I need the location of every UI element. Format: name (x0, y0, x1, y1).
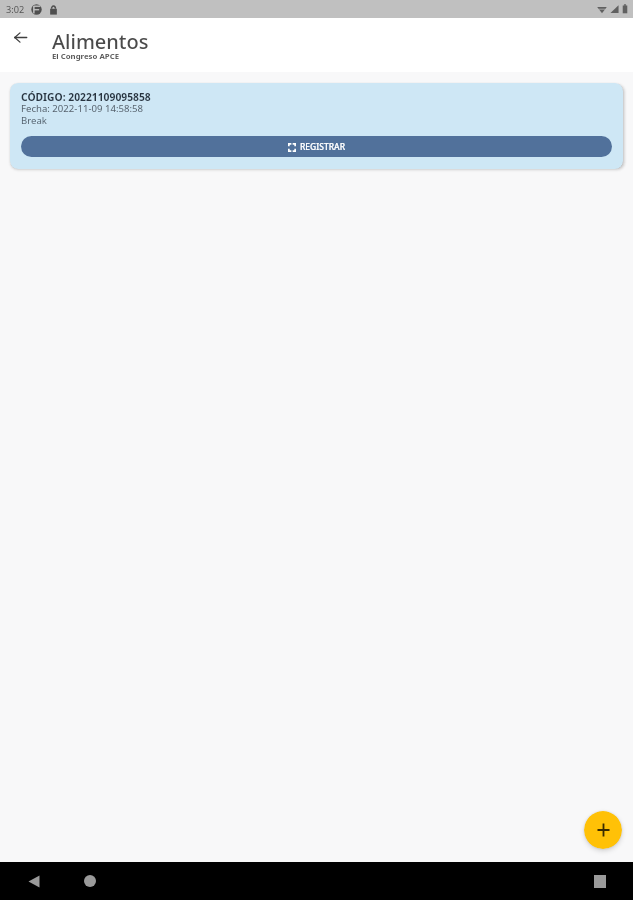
staticText: Fecha: 2022-11-09 14:58:58 (21, 102, 144, 114)
staticText: REGISTRAR (300, 141, 346, 153)
staticText: 3:02 (6, 3, 25, 16)
button[interactable]: Home (78, 869, 102, 893)
staticText: Break (21, 114, 47, 126)
button[interactable]: CÓDIGO: 20221109095858 (10, 83, 623, 169)
staticText: Alimentos (52, 28, 149, 55)
staticText: El Congreso APCE (52, 51, 119, 62)
button[interactable]: Back (7, 24, 33, 50)
button[interactable]: REGISTRAR (21, 136, 612, 157)
button[interactable]: Recent apps (588, 869, 612, 893)
button[interactable]: Add (584, 811, 622, 849)
staticText: CÓDIGO: 20221109095858 (21, 90, 151, 102)
button[interactable]: Back (22, 869, 46, 893)
